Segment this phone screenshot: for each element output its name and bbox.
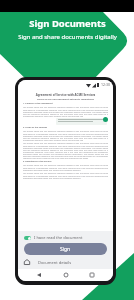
staticText: Terms of Use and document authority regu…	[23, 98, 108, 101]
button[interactable]: Document details	[24, 259, 107, 265]
staticText: 1. Purpose of the agreement	[23, 102, 108, 105]
staticText: 3. Definitions of the Service	[23, 160, 108, 163]
button[interactable]: Sign	[24, 243, 107, 255]
staticText: Sign	[60, 246, 71, 253]
staticText: The parties agree that the electronic si…	[23, 164, 108, 171]
staticText: I have read the document	[34, 235, 83, 240]
staticText: The parties agree that the electronic si…	[23, 142, 108, 159]
button[interactable]: Recent apps	[87, 270, 97, 280]
staticText: The parties agree that the electronic si…	[23, 172, 108, 179]
staticText: Sign and share documents digitally	[18, 33, 117, 41]
staticText: Sign Documents	[29, 17, 106, 30]
button[interactable]: Home	[61, 270, 71, 280]
staticText: 2. Scope of the services	[23, 126, 108, 129]
staticText: The parties agree that the electronic si…	[23, 130, 108, 141]
button[interactable]: I have read the document	[24, 235, 107, 240]
staticText: Agreement of Service with ACME Services	[23, 93, 108, 97]
button[interactable]: Back	[34, 270, 44, 280]
staticText: 12:30	[101, 82, 110, 87]
staticText: The parties agree that the electronic si…	[23, 106, 108, 117]
button[interactable]: Signature field	[103, 117, 108, 122]
staticText: Document details	[38, 260, 72, 265]
